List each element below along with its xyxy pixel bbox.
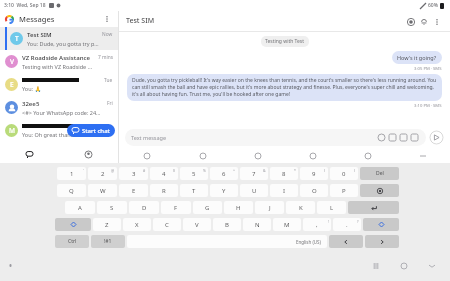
staticText: ) (354, 168, 356, 173)
button[interactable]: T (180, 184, 208, 197)
staticText: F (174, 204, 178, 212)
staticText: Test SIM (27, 31, 52, 39)
staticText: E (10, 80, 14, 89)
button[interactable]: 4 (150, 167, 178, 180)
button[interactable]: More options (101, 13, 113, 25)
button[interactable] (348, 201, 399, 214)
button[interactable]: G (193, 201, 222, 214)
button[interactable]: X (123, 218, 151, 231)
button[interactable]: English (US) (127, 235, 327, 248)
staticText: VZ Roadside Assistance (22, 54, 91, 62)
staticText: @ (111, 168, 115, 173)
button[interactable]: 7 (240, 167, 268, 180)
button[interactable]: D (129, 201, 159, 214)
button[interactable] (360, 184, 399, 197)
button[interactable]: K (286, 201, 315, 214)
button[interactable]: Recents (362, 251, 390, 281)
button[interactable]: Ctrl (55, 235, 89, 248)
staticText: G (205, 204, 210, 212)
button[interactable] (363, 218, 399, 231)
button[interactable]: J (255, 201, 284, 214)
button[interactable]: Contacts (59, 145, 118, 163)
button[interactable]: H (224, 201, 253, 214)
staticText: 7 mins (98, 54, 113, 61)
button[interactable]: More options (430, 15, 443, 28)
button[interactable]: 2 (88, 167, 117, 180)
button[interactable]: Q (57, 184, 86, 197)
button[interactable]: , (303, 218, 331, 231)
button[interactable]: F (161, 201, 191, 214)
staticText: 6 (222, 170, 226, 178)
staticText: N (255, 221, 260, 229)
button[interactable]: 9 (300, 167, 328, 180)
button[interactable]: N (243, 218, 271, 231)
button[interactable]: Attach (119, 149, 175, 163)
button[interactable]: Camera (409, 132, 420, 143)
button[interactable]: Y (210, 184, 238, 197)
button[interactable]: U (240, 184, 268, 197)
button[interactable]: 8 (270, 167, 298, 180)
button[interactable]: Send (429, 130, 444, 145)
button[interactable]: V (183, 218, 211, 231)
button[interactable]: Emoji (376, 132, 387, 143)
button[interactable]: S (97, 201, 127, 214)
button[interactable]: Emoji kit (230, 149, 285, 163)
button[interactable]: Collapse (395, 149, 450, 163)
button[interactable] (329, 235, 363, 248)
button[interactable]: Microphone (0, 251, 20, 281)
button[interactable]: E (0, 73, 118, 96)
staticText: Now (102, 31, 113, 38)
button[interactable]: How's it going? (392, 51, 442, 64)
staticText: C (165, 221, 169, 229)
button[interactable]: R (150, 184, 178, 197)
button[interactable]: Voice (285, 149, 340, 163)
button[interactable]: Notifications (417, 15, 430, 28)
button[interactable]: 0 (330, 167, 358, 180)
button[interactable]: Sticker (398, 132, 409, 143)
button[interactable]: O (300, 184, 328, 197)
button[interactable]: 6 (210, 167, 238, 180)
button[interactable]: Start chat (67, 124, 115, 137)
button[interactable]: P (330, 184, 358, 197)
button[interactable]: Video call (404, 15, 417, 28)
button[interactable]: L (317, 201, 346, 214)
staticText: Tue (104, 77, 113, 84)
button[interactable]: M (0, 119, 118, 142)
staticText: 1 (70, 170, 74, 178)
button[interactable]: M (273, 218, 301, 231)
button[interactable]: 5 (180, 167, 208, 180)
staticText: Testing with VZ Roadside A… (22, 63, 95, 70)
staticText: H (236, 204, 241, 212)
button[interactable]: !#1 (91, 235, 125, 248)
button[interactable]: T (0, 27, 118, 50)
button[interactable] (365, 235, 399, 248)
staticText: Messages (19, 14, 55, 24)
button[interactable]: Copy (175, 149, 230, 163)
staticText: 60% (428, 2, 438, 9)
button[interactable]: Z (93, 218, 121, 231)
button[interactable]: C (153, 218, 181, 231)
staticText: <#> Your WhatsApp code: 24… (22, 109, 101, 116)
button[interactable]: Gallery (387, 132, 398, 143)
staticText: R (162, 187, 166, 195)
button[interactable]: V (0, 50, 118, 73)
button[interactable]: B (213, 218, 241, 231)
button[interactable]: A (65, 201, 95, 214)
button[interactable]: 32ee5 (0, 96, 118, 119)
button[interactable]: E (119, 184, 148, 197)
button[interactable]: Conversations (0, 145, 59, 163)
button[interactable]: W (88, 184, 117, 197)
button[interactable] (55, 218, 91, 231)
button[interactable]: Dude, you gotta try pickleball! It's way… (127, 74, 442, 101)
button[interactable]: Text message (125, 129, 426, 146)
staticText: 8 (282, 170, 286, 178)
button[interactable]: Settings (340, 149, 395, 163)
button[interactable]: Back (418, 251, 446, 281)
button[interactable]: Del (360, 167, 399, 180)
button[interactable]: Home (390, 251, 418, 281)
staticText: M (284, 221, 290, 229)
button[interactable]: 1 (57, 167, 86, 180)
button[interactable]: 3 (119, 167, 148, 180)
button[interactable]: . (333, 218, 361, 231)
button[interactable]: I (270, 184, 298, 197)
